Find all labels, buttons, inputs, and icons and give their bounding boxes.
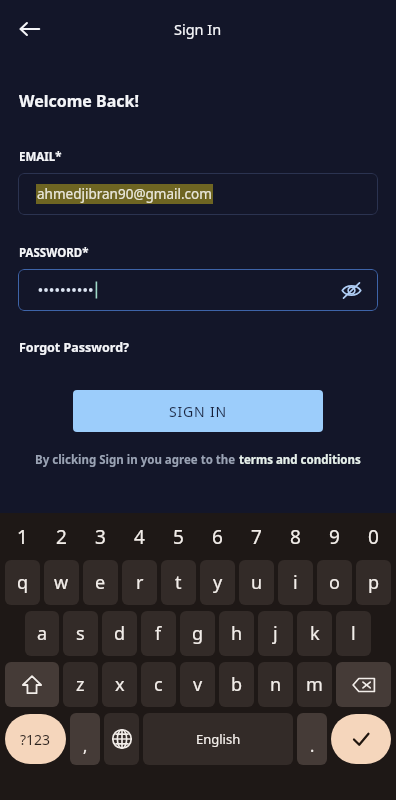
button[interactable]: p	[356, 560, 391, 605]
staticText: 0	[368, 524, 379, 550]
button[interactable]: Shift	[5, 662, 59, 707]
button[interactable]: Forgot Password?	[19, 339, 130, 356]
button[interactable]: l	[336, 611, 371, 656]
button[interactable]: u	[239, 560, 274, 605]
button[interactable]: t	[161, 560, 196, 605]
button[interactable]: 1	[3, 517, 42, 557]
staticText: g	[192, 621, 204, 646]
staticText: a	[37, 621, 48, 646]
staticText: By clicking Sign in you agree to the	[35, 452, 239, 468]
button[interactable]: Enter	[331, 714, 391, 764]
staticText: 3	[95, 524, 106, 550]
staticText: ,	[83, 735, 88, 757]
staticText: u	[251, 570, 263, 595]
button[interactable]: k	[297, 611, 332, 656]
staticText: h	[231, 621, 243, 646]
staticText: ?123	[20, 730, 51, 749]
button[interactable]: ,	[70, 713, 100, 765]
staticText: l	[351, 621, 356, 646]
staticText: f	[155, 621, 162, 646]
staticText: m	[306, 672, 323, 697]
button[interactable]: w	[44, 560, 79, 605]
button[interactable]: 9	[315, 517, 354, 557]
staticText: 5	[173, 524, 184, 550]
button[interactable]: i	[278, 560, 313, 605]
button[interactable]: b	[219, 662, 254, 707]
button[interactable]: z	[63, 662, 98, 707]
button[interactable]: d	[102, 611, 137, 656]
button[interactable]: 8	[276, 517, 315, 557]
button[interactable]: y	[200, 560, 235, 605]
staticText: x	[115, 672, 125, 697]
staticText: 8	[290, 524, 301, 550]
button[interactable]: 0	[354, 517, 393, 557]
button[interactable]: SIGN IN	[73, 390, 323, 432]
staticText: o	[329, 570, 340, 595]
staticText: d	[114, 621, 126, 646]
button[interactable]: q	[5, 560, 40, 605]
staticText: r	[136, 570, 144, 595]
staticText: w	[54, 570, 69, 595]
button[interactable]: terms and conditions	[239, 452, 361, 468]
staticText: v	[193, 672, 203, 697]
staticText: q	[17, 570, 29, 595]
staticText: Sign In	[174, 19, 222, 39]
staticText: 2	[56, 524, 67, 550]
button[interactable]: v	[180, 662, 215, 707]
staticText: 6	[212, 524, 223, 550]
button[interactable]: English	[143, 713, 293, 765]
staticText: b	[231, 672, 243, 697]
staticText: .	[310, 735, 315, 757]
staticText: ahmedjibran90@gmail.com	[37, 185, 212, 203]
button[interactable]: 6	[198, 517, 237, 557]
staticText: EMAIL*	[19, 149, 62, 165]
button[interactable]: j	[258, 611, 293, 656]
staticText: c	[154, 672, 163, 697]
staticText: s	[76, 621, 85, 646]
staticText: n	[270, 672, 282, 697]
button[interactable]: n	[258, 662, 293, 707]
staticText: 1	[17, 524, 28, 550]
button[interactable]: m	[297, 662, 332, 707]
button[interactable]: g	[180, 611, 215, 656]
button[interactable]: Toggle password visibility	[334, 273, 368, 307]
button[interactable]: s	[63, 611, 98, 656]
button[interactable]: c	[141, 662, 176, 707]
button[interactable]: r	[122, 560, 157, 605]
button[interactable]: a	[25, 611, 59, 656]
staticText: i	[293, 570, 298, 595]
button[interactable]: 4	[120, 517, 159, 557]
button[interactable]: ?123	[5, 714, 66, 764]
staticText: z	[76, 672, 85, 697]
button[interactable]: 2	[42, 517, 81, 557]
staticText: SIGN IN	[169, 402, 227, 421]
button[interactable]: h	[219, 611, 254, 656]
button[interactable]: 5	[159, 517, 198, 557]
staticText: p	[368, 570, 380, 595]
staticText: 7	[251, 524, 262, 550]
staticText: y	[213, 570, 223, 595]
staticText: 9	[329, 524, 340, 550]
button[interactable]: e	[83, 560, 118, 605]
staticText: e	[95, 570, 106, 595]
button[interactable]: x	[102, 662, 137, 707]
button[interactable]: 3	[81, 517, 120, 557]
staticText: English	[196, 730, 241, 748]
staticText: t	[175, 570, 182, 595]
staticText: 4	[134, 524, 145, 550]
button[interactable]: o	[317, 560, 352, 605]
staticText: PASSWORD*	[19, 245, 89, 261]
staticText: j	[273, 621, 278, 646]
button[interactable]: .	[297, 713, 327, 765]
button[interactable]: Backspace	[336, 662, 391, 707]
staticText: k	[310, 621, 320, 646]
staticText: Welcome Back!	[19, 90, 139, 112]
button[interactable]: 7	[237, 517, 276, 557]
button[interactable]: ahmedjibran90@gmail.com	[18, 173, 378, 215]
button[interactable]: Change language	[104, 713, 139, 765]
button[interactable]: f	[141, 611, 176, 656]
button[interactable]: Back	[10, 9, 50, 49]
button[interactable]: Toggle password visibility	[18, 269, 378, 311]
